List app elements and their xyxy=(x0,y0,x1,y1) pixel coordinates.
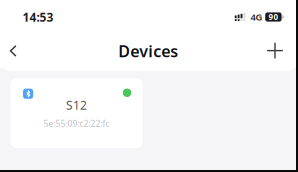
staticText: 4G xyxy=(250,11,262,23)
staticText: 5e:55:09:c2:22:fc xyxy=(44,117,110,129)
staticText: S12 xyxy=(66,97,87,113)
button[interactable]: Back xyxy=(0,37,27,64)
staticText: 90 xyxy=(268,12,278,22)
button[interactable]: S12 xyxy=(11,78,143,148)
staticText: Devices xyxy=(118,40,178,62)
button[interactable]: Add device xyxy=(261,37,288,64)
staticText: 14:53 xyxy=(22,9,53,25)
